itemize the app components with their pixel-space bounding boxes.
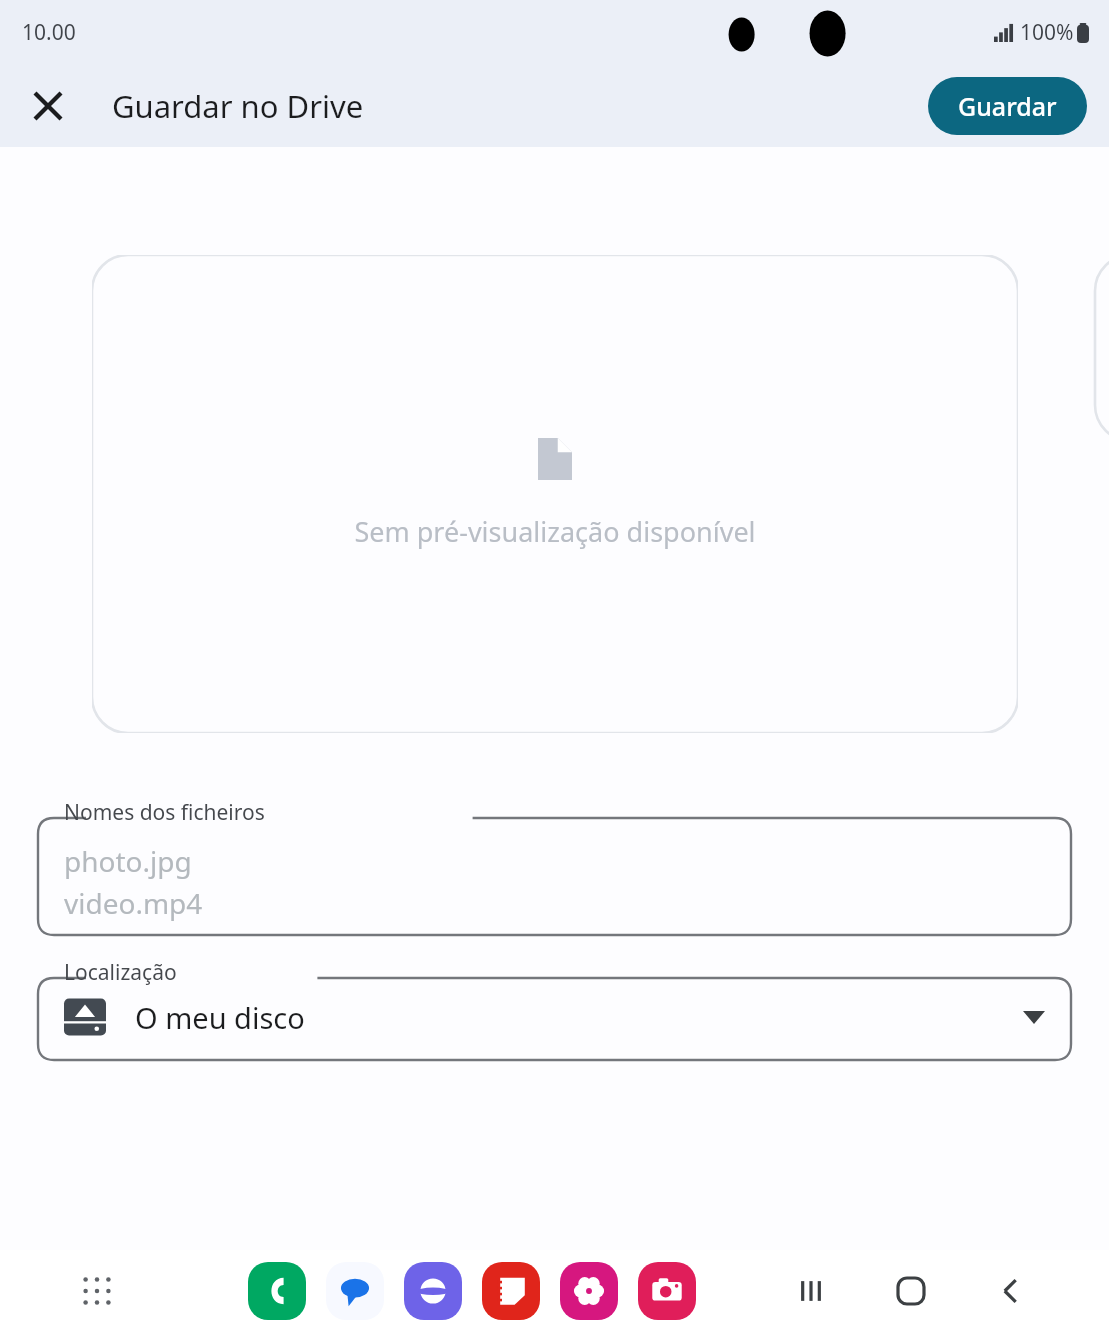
button[interactable]: Recentes [783, 1263, 839, 1319]
button[interactable]: Aplicações [70, 1264, 124, 1318]
staticText: 10.00 [22, 18, 76, 47]
staticText: 100% [1020, 18, 1074, 47]
staticText: Localização [64, 958, 177, 987]
staticText: O meu disco [135, 998, 305, 1037]
staticText: Sem pré-visualização disponível [354, 513, 756, 550]
button[interactable]: Internet [404, 1262, 462, 1320]
button[interactable]: Notas [482, 1262, 540, 1320]
staticText: photo.jpg [64, 842, 192, 880]
button[interactable]: Localização [0, 960, 1109, 1060]
button[interactable]: Galeria [560, 1262, 618, 1320]
staticText: Guardar no Drive [112, 85, 364, 127]
button[interactable]: Mensagens [326, 1262, 384, 1320]
button[interactable]: Guardar [928, 77, 1087, 135]
button[interactable]: Telefone [248, 1262, 306, 1320]
button[interactable]: Início [883, 1263, 939, 1319]
button[interactable]: Voltar [983, 1263, 1039, 1319]
staticText: Guardar [958, 89, 1057, 123]
button[interactable]: Sem pré-visualização disponível [92, 255, 1018, 733]
button[interactable]: Câmara [638, 1262, 696, 1320]
staticText: Nomes dos ficheiros [64, 798, 265, 827]
staticText: video.mp4 [64, 884, 203, 922]
button[interactable]: Fechar [22, 80, 74, 132]
